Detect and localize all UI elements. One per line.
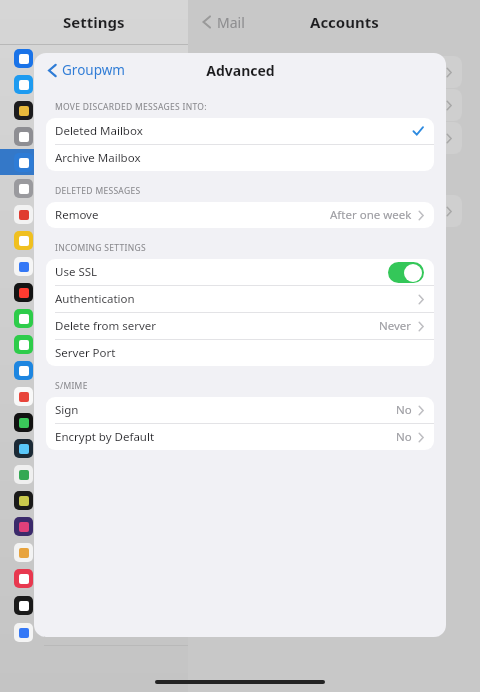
button[interactable] <box>14 357 188 383</box>
button[interactable] <box>14 45 188 71</box>
staticText: After one week <box>330 207 412 223</box>
staticText: MOVE DISCARDED MESSAGES INTO: <box>55 101 207 113</box>
staticText: No <box>396 402 412 418</box>
button[interactable]: Authentication <box>46 286 434 313</box>
staticText: Delete from server <box>55 318 156 334</box>
staticText: DELETED MESSAGES <box>55 185 141 197</box>
staticText: Authentication <box>55 291 135 307</box>
button[interactable]: Use SSL on <box>388 262 424 283</box>
staticText: Encrypt by Default <box>55 429 155 445</box>
button[interactable] <box>14 539 188 565</box>
button[interactable] <box>14 201 188 227</box>
staticText: Sign <box>55 402 79 418</box>
staticText: S/MIME <box>55 380 88 392</box>
staticText: Settings <box>63 12 125 32</box>
button[interactable]: Use SSL <box>46 259 434 286</box>
button[interactable] <box>14 461 188 487</box>
button[interactable]: Deleted Mailbox <box>46 118 434 145</box>
button[interactable] <box>14 513 188 539</box>
staticText: Server Port <box>55 345 116 361</box>
button[interactable]: TV <box>14 592 188 618</box>
staticText: Never <box>379 318 412 334</box>
button[interactable] <box>14 383 188 409</box>
button[interactable]: Photos <box>14 619 188 645</box>
staticText: Deleted Mailbox <box>55 123 143 139</box>
button[interactable]: Music <box>14 565 188 591</box>
button[interactable]: Sign <box>46 397 434 424</box>
button[interactable] <box>14 149 188 175</box>
staticText: Remove <box>55 207 99 223</box>
button[interactable] <box>14 253 188 279</box>
button[interactable] <box>14 97 188 123</box>
staticText: Accounts <box>310 12 379 32</box>
button[interactable] <box>14 331 188 357</box>
button[interactable]: Delete from server <box>46 313 434 340</box>
staticText: Photos <box>43 623 86 641</box>
staticText: Mail <box>217 13 245 32</box>
button[interactable] <box>14 305 188 331</box>
staticText: Use SSL <box>55 264 98 280</box>
button[interactable] <box>14 123 188 149</box>
button[interactable] <box>14 435 188 461</box>
other: Selected <box>412 125 424 137</box>
button[interactable] <box>14 487 188 513</box>
button[interactable] <box>14 279 188 305</box>
button[interactable]: Archive Mailbox <box>46 145 434 171</box>
button[interactable] <box>14 409 188 435</box>
button[interactable]: Groupwm <box>44 58 129 82</box>
staticText: Archive Mailbox <box>55 150 141 166</box>
staticText: Groupwm <box>62 61 125 79</box>
button[interactable] <box>14 175 188 201</box>
button[interactable]: Server Port <box>46 340 434 366</box>
staticText: INCOMING SETTINGS <box>55 242 146 254</box>
button[interactable]: Encrypt by Default <box>46 424 434 450</box>
button[interactable]: Remove <box>46 202 434 228</box>
staticText: Advanced <box>206 61 275 80</box>
button[interactable] <box>14 71 188 97</box>
staticText: No <box>396 429 412 445</box>
button[interactable] <box>14 227 188 253</box>
